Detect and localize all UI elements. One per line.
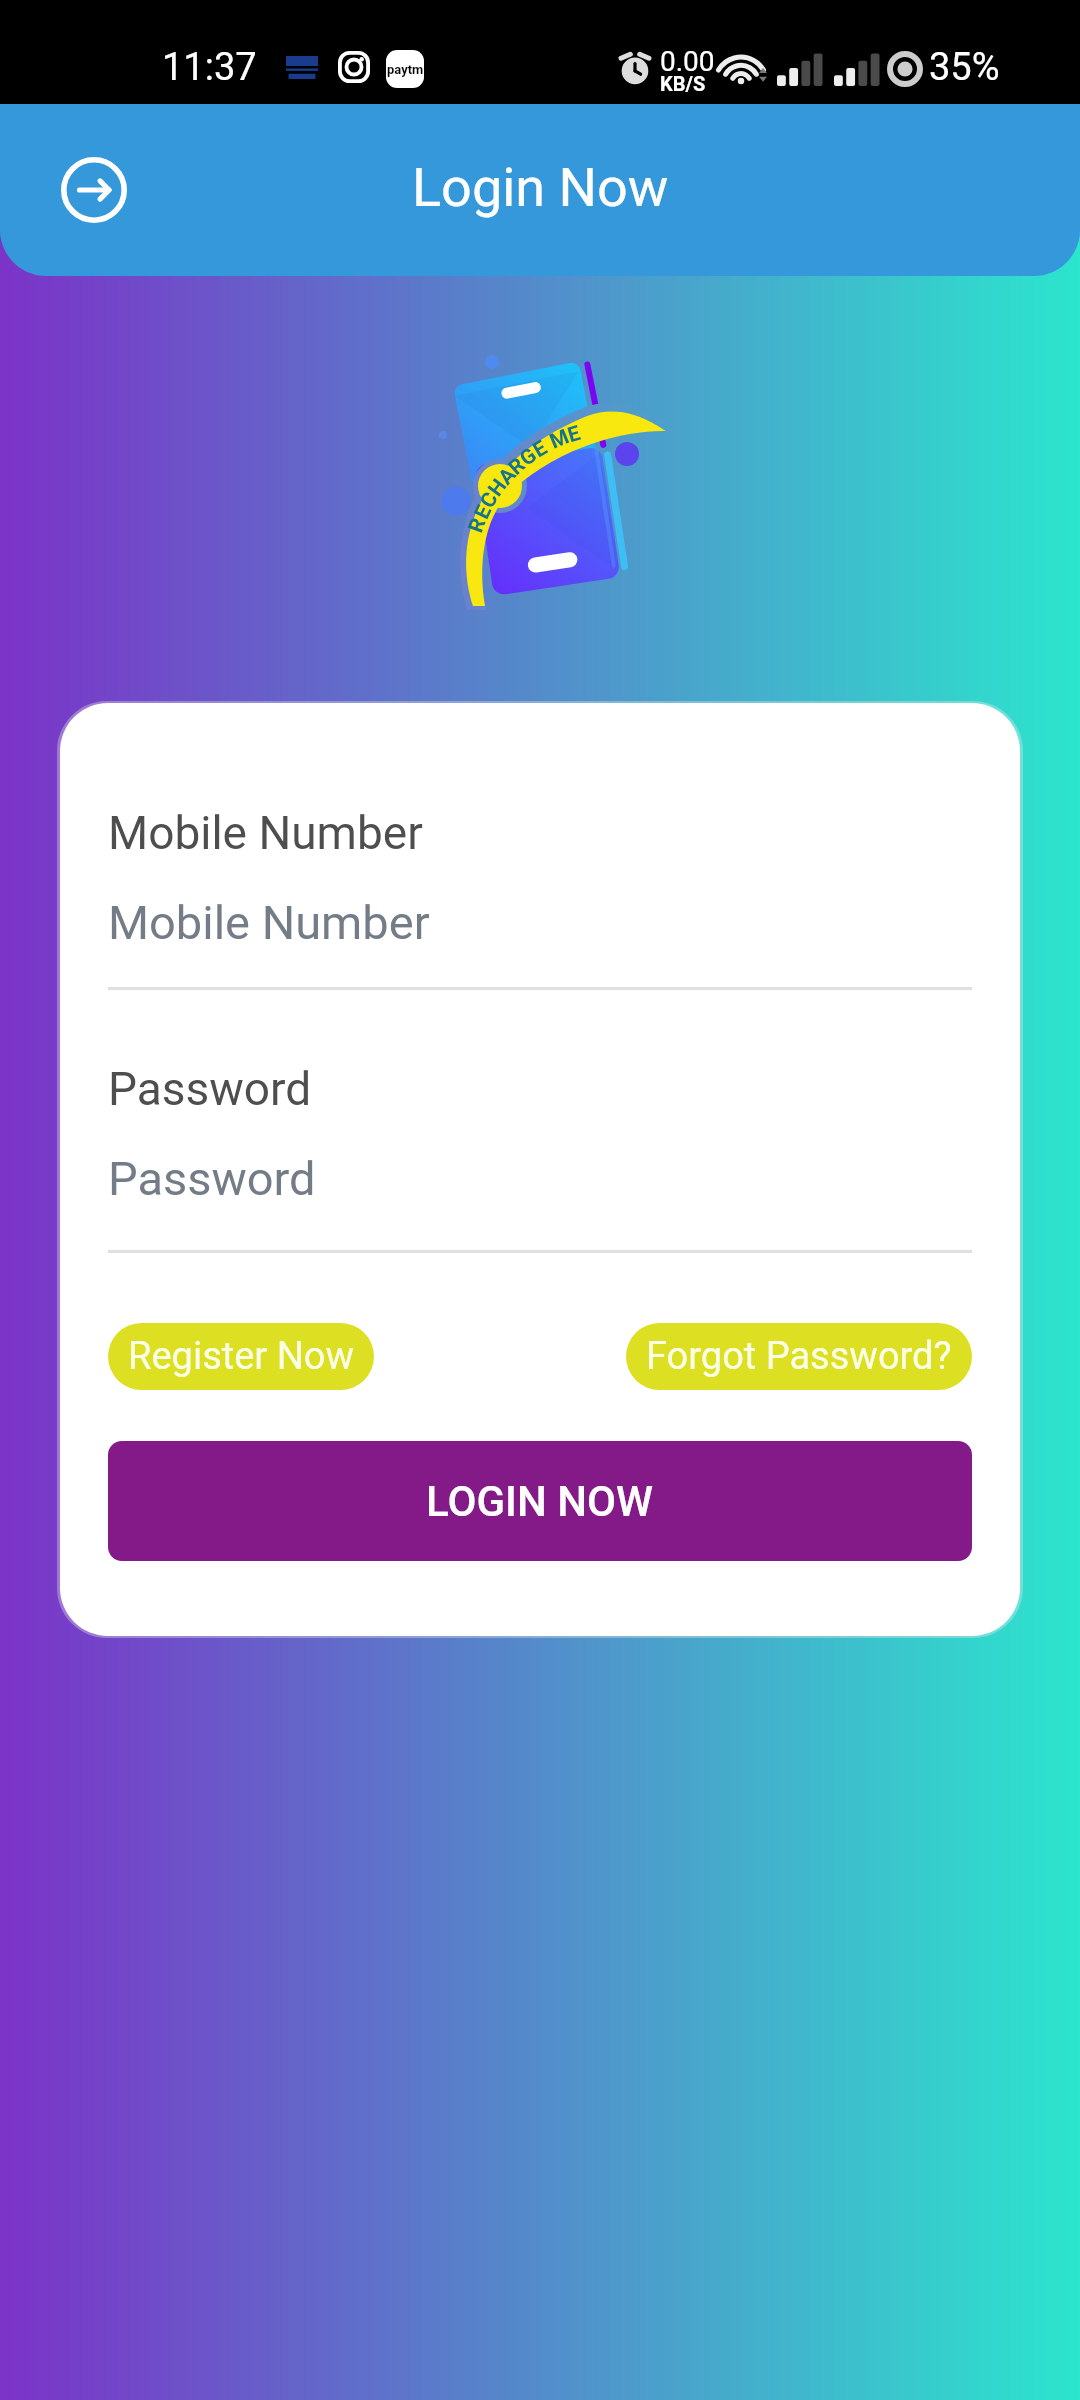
- staticText: LOGIN NOW: [426, 1477, 654, 1526]
- staticText: Forgot Password?: [646, 1334, 952, 1379]
- staticText: 0.00: [660, 45, 715, 78]
- button[interactable]: Mobile Number: [108, 895, 972, 950]
- button[interactable]: Forgot Password?: [626, 1323, 972, 1390]
- staticText: E: [565, 421, 583, 448]
- staticText: C: [475, 488, 504, 513]
- staticText: H: [483, 474, 512, 501]
- staticText: Login Now: [412, 156, 669, 219]
- button[interactable]: Back: [61, 157, 127, 223]
- button[interactable]: LOGIN NOW: [108, 1441, 972, 1561]
- staticText: 11:37: [162, 45, 257, 90]
- staticText: Mobile Number: [108, 895, 430, 950]
- staticText: E: [529, 436, 552, 463]
- staticText: Password: [108, 1062, 312, 1116]
- button[interactable]: Register Now: [108, 1323, 374, 1390]
- button[interactable]: Password: [108, 1151, 972, 1206]
- staticText: Register Now: [128, 1334, 354, 1379]
- staticText: 35%: [929, 45, 1000, 90]
- staticText: E: [470, 501, 497, 523]
- staticText: R: [463, 514, 492, 536]
- staticText: paytm: [387, 62, 424, 77]
- staticText: G: [515, 443, 542, 472]
- staticText: A: [493, 462, 522, 490]
- staticText: KB/S: [660, 72, 706, 95]
- staticText: M: [546, 424, 573, 454]
- staticText: Mobile Number: [108, 806, 423, 860]
- staticText: Password: [108, 1151, 316, 1206]
- staticText: R: [504, 452, 531, 480]
